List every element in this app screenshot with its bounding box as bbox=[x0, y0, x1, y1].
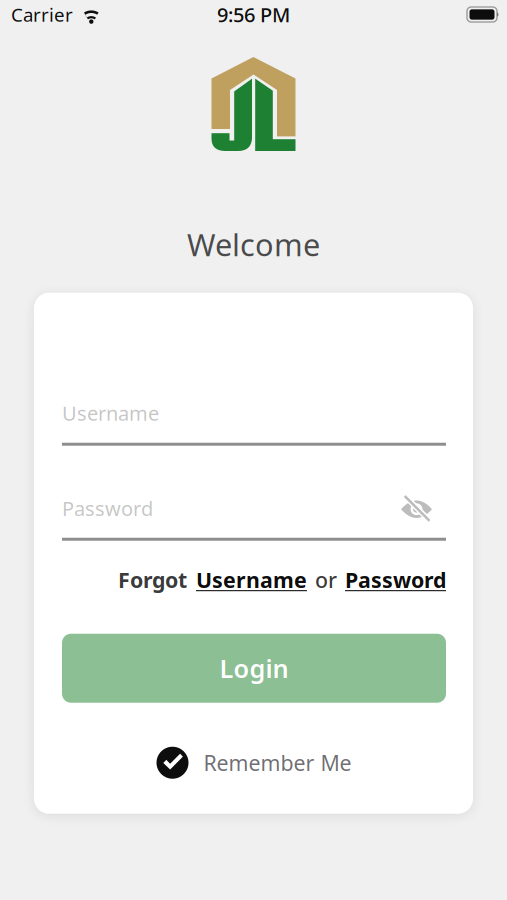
staticText: Carrier bbox=[11, 2, 73, 27]
staticText: Remember Me bbox=[203, 749, 351, 777]
button[interactable]: Login bbox=[62, 634, 446, 703]
button[interactable]: Remember Me bbox=[156, 747, 351, 779]
staticText: Username bbox=[196, 566, 307, 594]
staticText: Forgot bbox=[118, 566, 187, 594]
button[interactable]: Username bbox=[187, 566, 315, 594]
staticText: Login bbox=[219, 651, 288, 685]
button[interactable]: Password bbox=[337, 566, 446, 594]
staticText: Username bbox=[62, 400, 159, 426]
staticText: 9:56 PM bbox=[217, 1, 290, 28]
staticText: or bbox=[315, 566, 337, 594]
staticText: Welcome bbox=[187, 224, 320, 265]
staticText: Password bbox=[345, 566, 446, 594]
staticText: Password bbox=[62, 495, 153, 521]
button[interactable]: Show password bbox=[401, 495, 432, 522]
